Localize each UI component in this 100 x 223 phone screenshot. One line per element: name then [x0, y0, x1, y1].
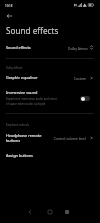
button[interactable]: Sound effects: [0, 42, 100, 53]
staticText: Assign buttons: [6, 153, 33, 158]
button[interactable]: Graphic equaliser: [0, 72, 100, 83]
staticText: Earphone controls: [6, 123, 30, 127]
staticText: 10:18: [5, 4, 13, 8]
button[interactable]: Assign buttons: [0, 150, 100, 161]
staticText: Graphic equaliser: [6, 75, 38, 80]
staticText: Custom: [74, 76, 86, 80]
staticText: Dolby Atmos: [68, 46, 88, 50]
button[interactable]: Headphone remote buttons: [0, 130, 100, 146]
staticText: Dolby effects: [6, 66, 23, 70]
button[interactable]: Recent apps: [60, 205, 74, 219]
staticText: Immersive sound: [6, 90, 38, 95]
button[interactable]: Back: [3, 10, 15, 22]
staticText: Sound effects: [6, 45, 31, 50]
staticText: Sound effects: [6, 25, 59, 36]
button[interactable]: Home: [43, 205, 57, 219]
button[interactable]: Immersive sound: [0, 87, 100, 109]
button[interactable]: Back: [23, 205, 37, 219]
button[interactable]: Immersive sound: [80, 96, 90, 101]
staticText: Control volume level: [54, 136, 86, 140]
staticText: Headphone remote buttons: [6, 133, 42, 143]
staticText: Experience immersive audio and sense of …: [6, 97, 60, 105]
